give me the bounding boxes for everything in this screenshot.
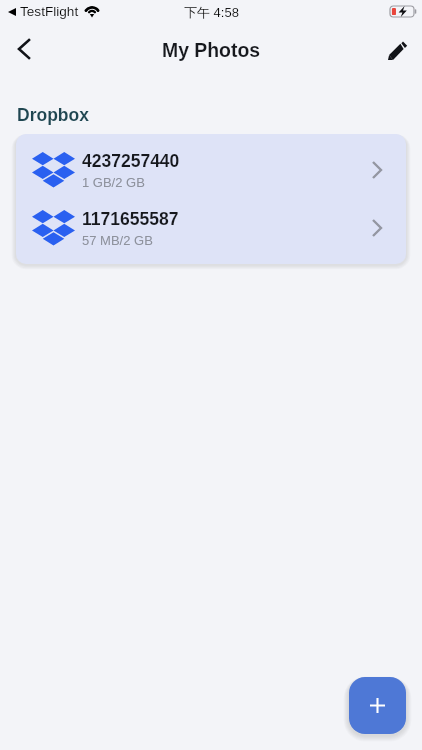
button[interactable]: 4237257440 [16, 141, 406, 199]
staticText: My Photos [162, 39, 261, 61]
button[interactable]: Edit [375, 27, 419, 71]
staticText: Dropbox [17, 105, 89, 125]
staticText: 4237257440 [82, 151, 180, 171]
staticText: 1 GB/2 GB [82, 175, 145, 190]
staticText: 57 MB/2 GB [82, 233, 153, 248]
staticText: TestFlight [20, 4, 79, 19]
staticText: 1171655587 [82, 209, 179, 229]
staticText: 下午 4:58 [184, 4, 239, 20]
button[interactable]: Back [2, 27, 46, 71]
button[interactable]: Add [349, 677, 406, 734]
button[interactable]: 1171655587 [16, 199, 406, 257]
